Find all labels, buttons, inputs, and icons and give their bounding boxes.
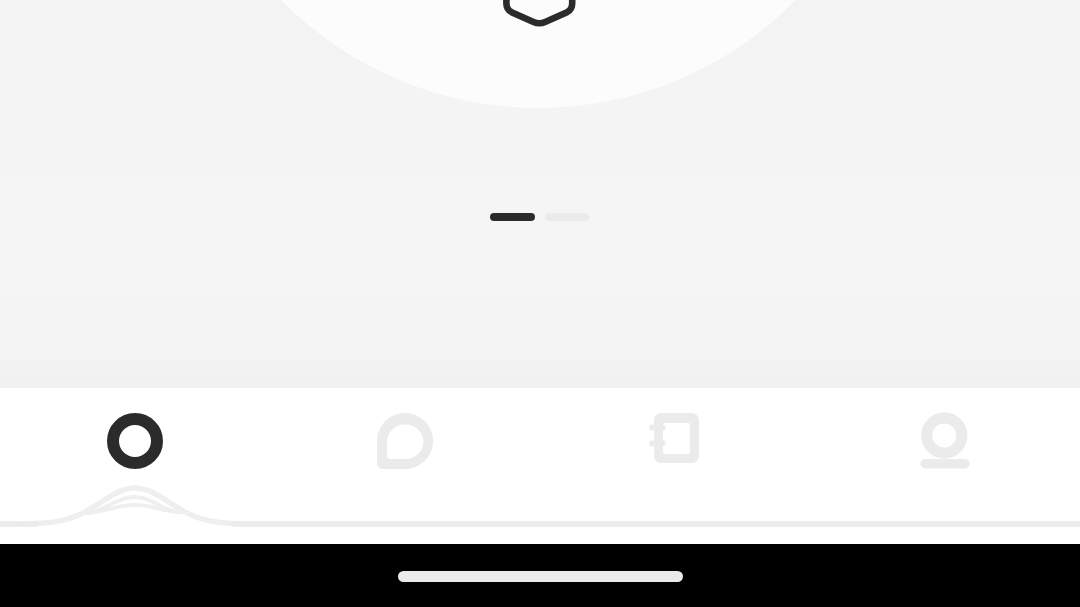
button[interactable]: Contacts xyxy=(540,388,810,494)
button[interactable]: Home xyxy=(0,388,270,494)
button[interactable]: Chats xyxy=(270,388,540,494)
button[interactable]: Profile xyxy=(810,388,1080,494)
button[interactable]: Home gesture bar xyxy=(398,571,683,582)
button[interactable]: Page 1 of 2 xyxy=(490,213,535,221)
